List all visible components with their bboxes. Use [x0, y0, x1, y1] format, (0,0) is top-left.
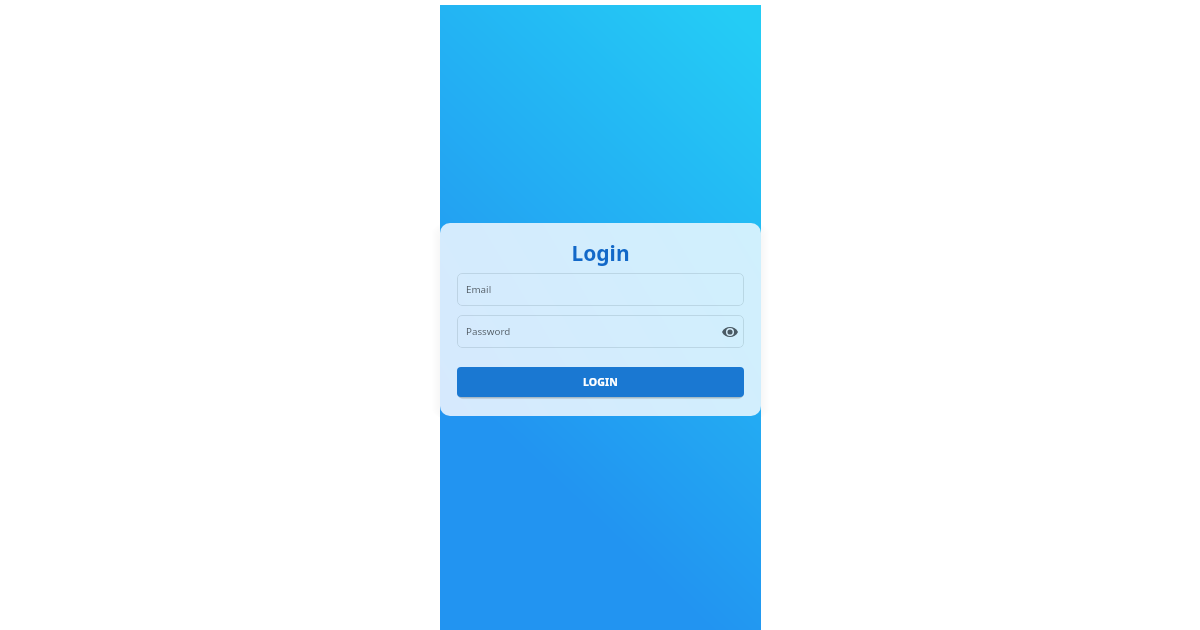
button[interactable]: Toggle password visibility	[720, 320, 739, 344]
button[interactable]: Password	[457, 315, 744, 348]
button[interactable]: LOGIN	[457, 367, 744, 397]
button[interactable]: Email	[457, 273, 744, 306]
staticText: Password	[466, 325, 511, 338]
staticText: LOGIN	[583, 375, 618, 389]
staticText: Login	[571, 239, 630, 268]
staticText: Email	[466, 283, 492, 296]
